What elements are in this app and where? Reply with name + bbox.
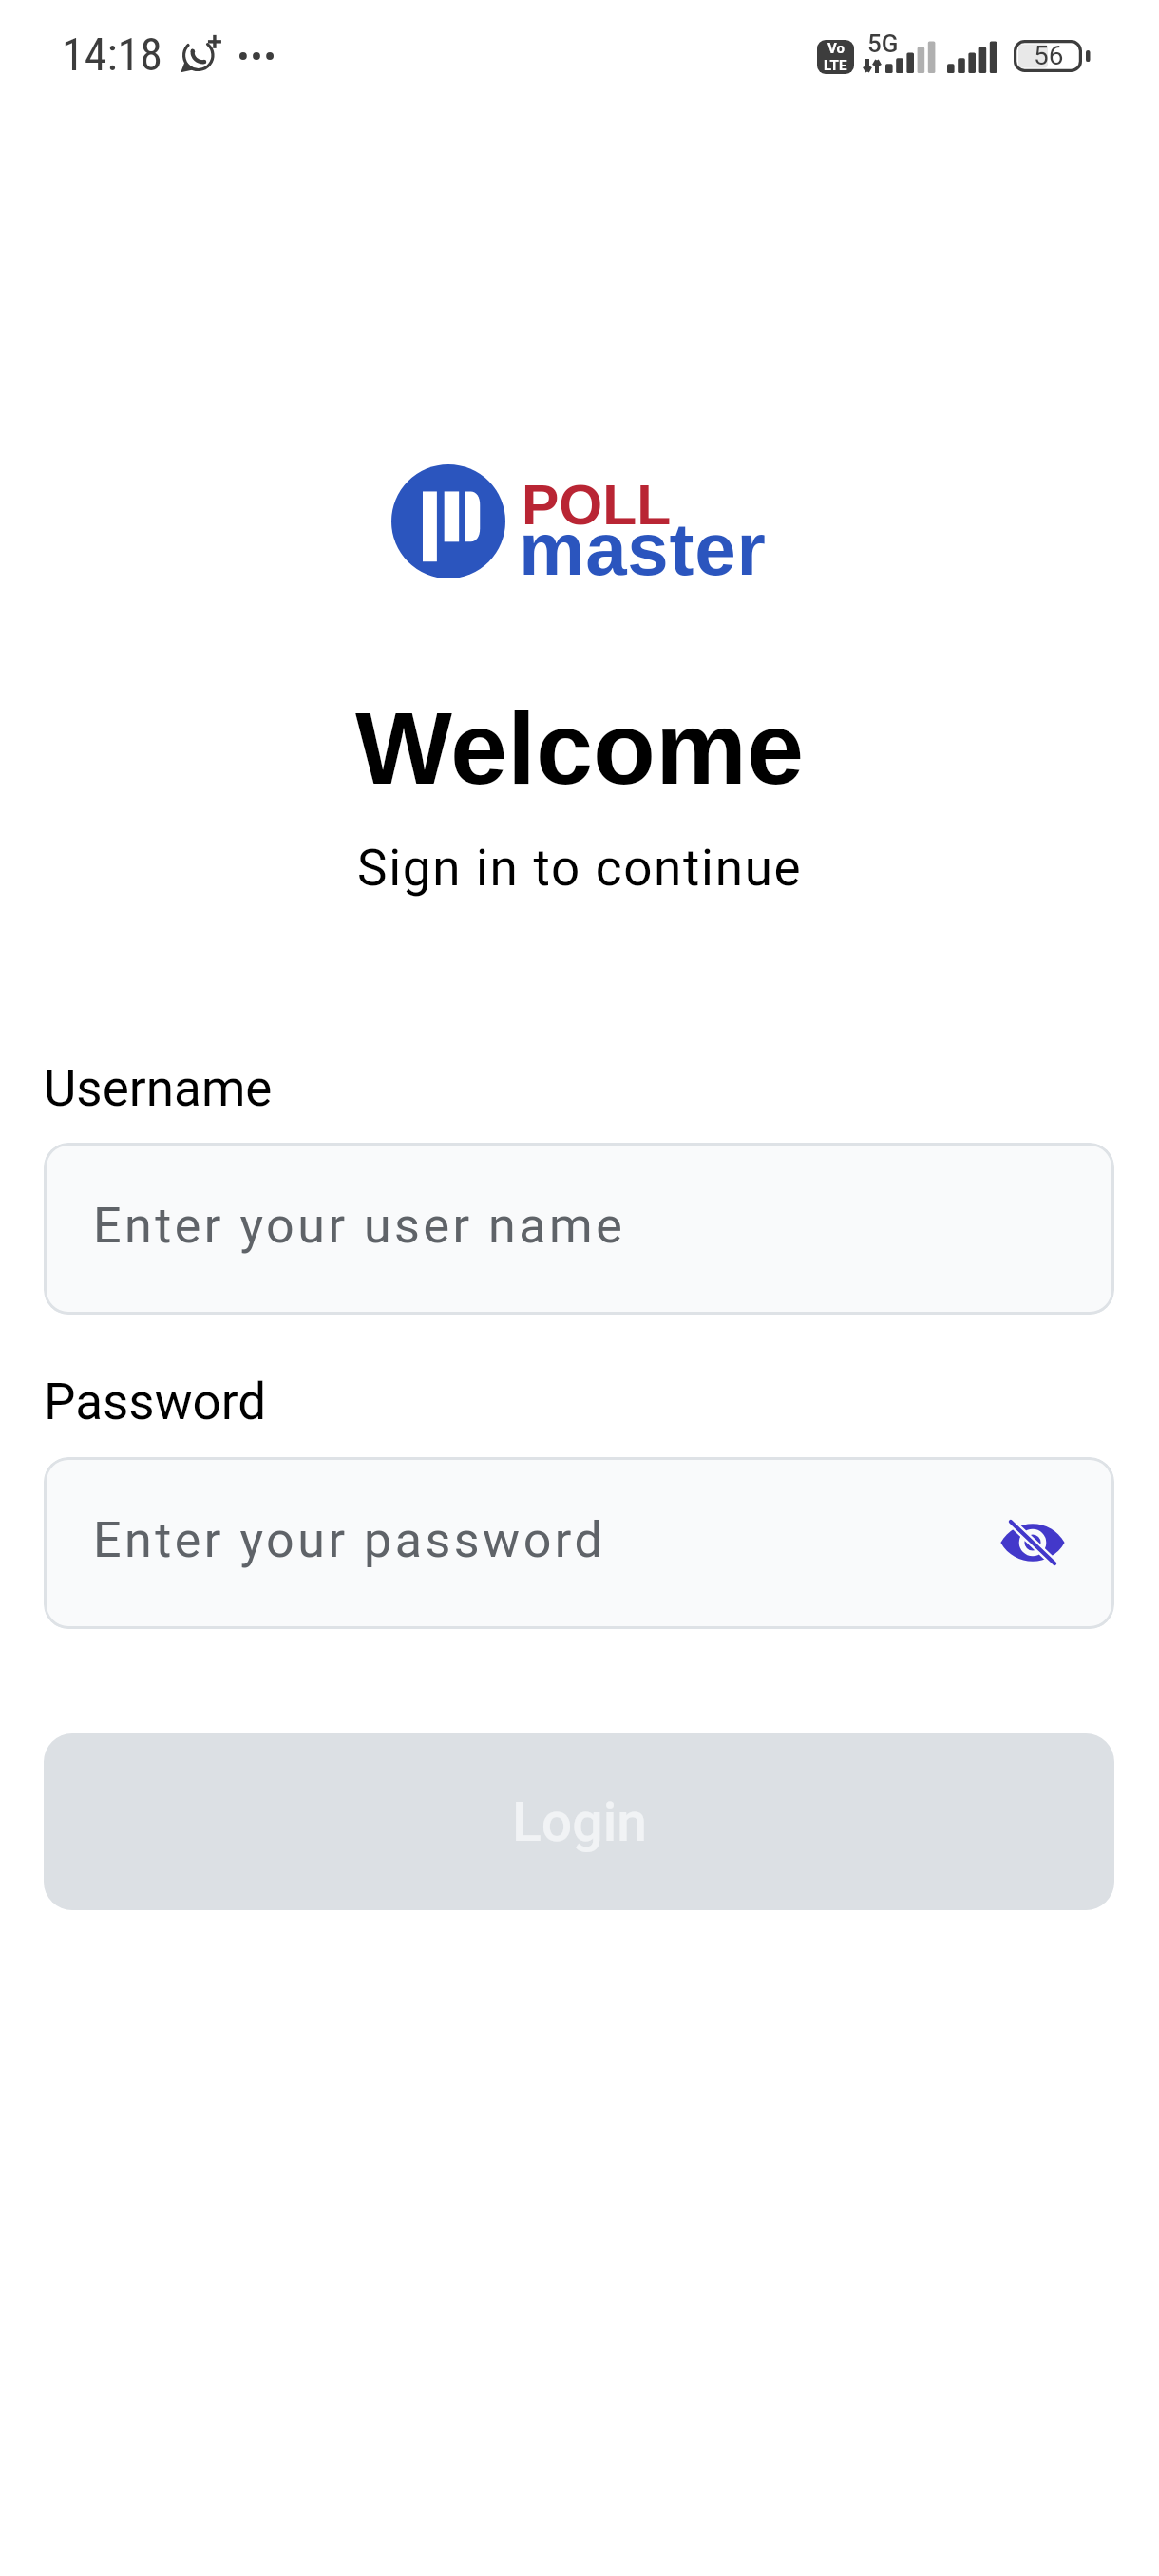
staticText: LTE	[824, 57, 847, 74]
staticText: Login	[512, 1790, 647, 1854]
staticText: Welcome	[355, 691, 805, 805]
staticText: POLL	[522, 474, 672, 537]
staticText: 5G	[867, 29, 899, 58]
staticText: 56	[1034, 40, 1064, 71]
staticText: Username	[44, 1059, 273, 1118]
staticText: Password	[44, 1373, 267, 1431]
staticText: 14:18	[62, 28, 162, 81]
button[interactable]: Enter your password	[44, 1457, 1114, 1629]
button[interactable]: Login	[44, 1733, 1114, 1910]
button[interactable]: Show password	[991, 1501, 1074, 1584]
staticText: Enter your password	[93, 1511, 606, 1569]
staticText: Vo	[827, 40, 845, 57]
staticText: Sign in to continue	[357, 839, 803, 898]
staticText: master	[519, 507, 767, 590]
staticText: Enter your user name	[93, 1197, 626, 1255]
button[interactable]: Enter your user name	[44, 1143, 1114, 1315]
